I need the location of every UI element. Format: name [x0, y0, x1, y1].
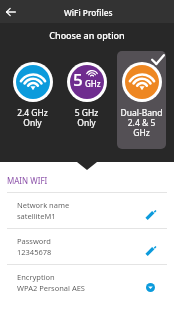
- button[interactable]: Back: [2, 3, 20, 21]
- staticText: 5: [73, 68, 83, 91]
- staticText: 5 GHz Only: [62, 107, 111, 128]
- staticText: GHz: [85, 78, 101, 89]
- staticText: Password: [17, 236, 51, 246]
- staticText: Network name: [17, 200, 70, 210]
- staticText: Encryption: [17, 272, 55, 282]
- button[interactable]: Choose encryption: [146, 283, 155, 292]
- staticText: WPA2 Personal AES: [17, 283, 85, 293]
- staticText: 2.4 GHz Only: [8, 107, 57, 128]
- button[interactable]: 2.4 GHz Only: [8, 51, 57, 149]
- staticText: Dual-Band 2.4 & 5 GHz: [117, 107, 166, 138]
- button[interactable]: Network name: [0, 193, 174, 228]
- staticText: 12345678: [17, 247, 52, 257]
- staticText: satelliteM1: [17, 211, 56, 221]
- button[interactable]: Encryption: [0, 265, 174, 300]
- button[interactable]: Dual-Band 2.4 & 5 GHz: [117, 51, 166, 149]
- button[interactable]: Password: [0, 229, 174, 264]
- button[interactable]: Edit Network name: [144, 207, 160, 223]
- button[interactable]: 5: [62, 51, 111, 149]
- staticText: MAIN WIFI: [7, 175, 48, 186]
- button[interactable]: Edit Password: [144, 243, 160, 259]
- staticText: WiFi Profiles: [64, 7, 113, 18]
- staticText: Choose an option: [0, 29, 174, 41]
